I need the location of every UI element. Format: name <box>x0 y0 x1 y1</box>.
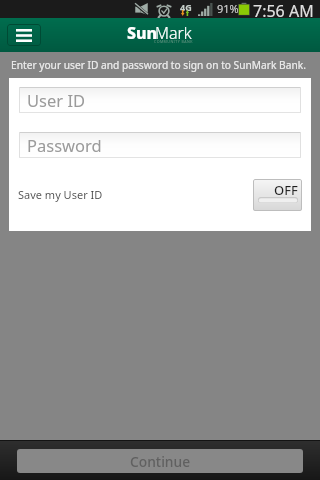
staticText: Sun <box>127 22 158 44</box>
button[interactable]: User ID <box>19 87 301 113</box>
staticText: Password <box>27 134 102 156</box>
button[interactable]: Password <box>19 132 301 158</box>
staticText: Save my User ID <box>18 187 103 202</box>
staticText: 4G <box>180 1 192 13</box>
button[interactable]: Save my User ID switch, off <box>253 179 302 211</box>
button[interactable]: Open navigation menu <box>7 24 41 46</box>
staticText: Enter your user ID and password to sign … <box>11 58 306 72</box>
button[interactable]: Continue <box>17 449 303 473</box>
staticText: User ID <box>27 89 86 111</box>
staticText: 7:56 AM <box>253 0 314 18</box>
staticText: Mark <box>155 22 192 44</box>
staticText: Continue <box>130 452 191 471</box>
staticText: COMMUNITY BANK <box>154 39 193 44</box>
staticText: 91% <box>217 1 239 16</box>
staticText: OFF <box>274 181 298 199</box>
